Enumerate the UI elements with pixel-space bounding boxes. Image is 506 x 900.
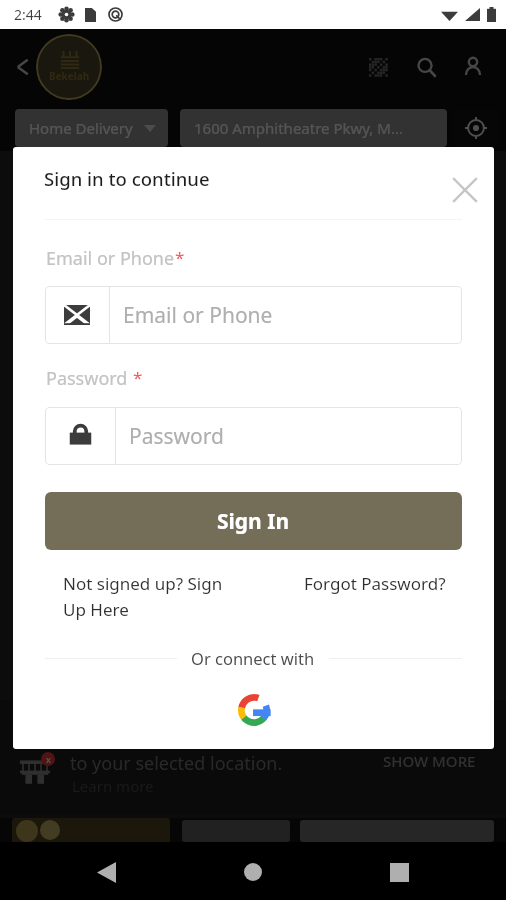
staticText: Sign in to continue xyxy=(44,166,210,191)
other: Account xyxy=(462,56,484,78)
button[interactable]: SHOW MORE xyxy=(383,751,476,771)
button[interactable]: Sign in with Google xyxy=(231,687,277,733)
other: Search xyxy=(416,57,437,78)
staticText: * xyxy=(133,366,143,389)
staticText: Or connect with xyxy=(191,647,315,669)
staticText: Bekelah xyxy=(49,69,90,83)
staticText: Email or Phone xyxy=(123,301,273,330)
button[interactable]: Back xyxy=(82,848,130,896)
staticText: Password xyxy=(129,422,224,451)
staticText: Home Delivery xyxy=(29,118,133,138)
staticText: Not signed up? Sign Up Here xyxy=(63,572,223,621)
button[interactable]: Recent apps xyxy=(375,848,423,896)
button[interactable]: Email or Phone xyxy=(45,286,462,344)
button[interactable]: 1600 Amphitheatre Pkwy, M... xyxy=(180,109,447,147)
staticText: x xyxy=(46,753,51,765)
button[interactable]: Not signed up? Sign Up Here xyxy=(63,572,223,621)
button[interactable]: Home Delivery xyxy=(15,109,168,147)
staticText: to your selected location. xyxy=(70,751,283,776)
other: Back xyxy=(10,54,36,80)
staticText: Sign In xyxy=(217,507,290,536)
staticText: 2:44 xyxy=(14,5,42,24)
button[interactable]: Password xyxy=(45,407,462,465)
staticText: Email or Phone xyxy=(46,246,175,271)
staticText: 2:44 xyxy=(14,5,42,24)
button[interactable]: Sign In xyxy=(45,492,462,550)
button[interactable]: Forgot Password? xyxy=(304,572,464,595)
staticText: Password xyxy=(46,366,133,391)
staticText: Forgot Password? xyxy=(304,572,446,595)
button[interactable]: Home xyxy=(229,848,277,896)
button[interactable]: Close xyxy=(441,166,489,214)
staticText: 1600 Amphitheatre Pkwy, M... xyxy=(194,118,403,138)
button[interactable]: Use current location xyxy=(453,109,498,147)
other: Scan xyxy=(369,58,388,77)
staticText: * xyxy=(175,246,185,269)
staticText: Learn more xyxy=(72,776,154,796)
